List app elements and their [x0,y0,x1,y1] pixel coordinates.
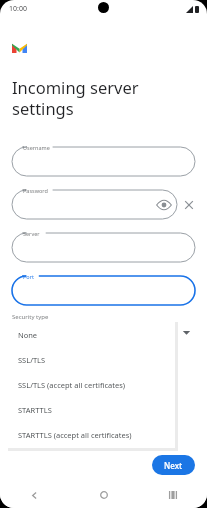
staticText: SSL/TLS [18,355,46,365]
button[interactable]: SSL/TLS [8,347,175,372]
staticText: Server [23,230,40,237]
button[interactable]: Username [12,147,195,176]
staticText: Username [23,144,50,151]
button[interactable]: Next [152,455,195,475]
button[interactable]: Clear [181,197,197,213]
button[interactable]: Port [12,276,195,305]
button[interactable]: Password [12,190,177,219]
button[interactable]: STARTTLS [8,397,175,422]
button[interactable]: Show password [156,197,172,213]
staticText: 10:00 [9,4,27,14]
staticText: Port [23,273,34,280]
button[interactable]: SSL/TLS (accept all certificates) [8,372,175,397]
staticText: STARTTLS (accept all certificates) [18,430,132,440]
staticText: Password [23,187,48,194]
button[interactable]: Home [69,482,138,508]
button[interactable]: Server [12,233,195,262]
staticText: STARTTLS [18,405,52,415]
button[interactable]: Back [0,482,69,508]
button[interactable]: STARTTLS (accept all certificates) [8,422,175,447]
staticText: SSL/TLS (accept all certificates) [18,380,125,390]
staticText: Incoming server settings [12,76,139,120]
button[interactable]: Open security type menu [180,326,193,339]
staticText: Security type [12,313,49,321]
button[interactable]: Recent apps [138,482,207,508]
staticText: None [18,330,38,340]
button[interactable]: None [8,322,175,347]
staticText: Next [164,460,183,471]
